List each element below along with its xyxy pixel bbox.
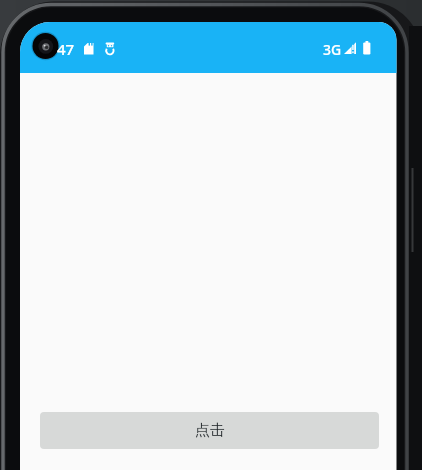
staticText: 47 bbox=[57, 39, 75, 59]
button[interactable]: 点击 bbox=[40, 412, 379, 449]
staticText: 点击 bbox=[195, 421, 225, 440]
staticText: 3G bbox=[323, 40, 342, 59]
